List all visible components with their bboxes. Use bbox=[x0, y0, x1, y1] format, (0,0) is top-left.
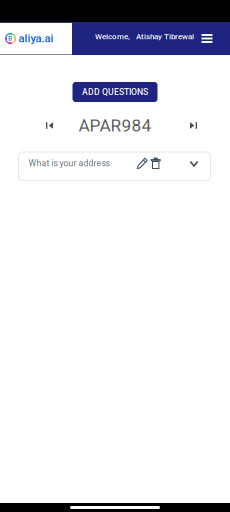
staticText: Welcome, Atishay Tibrewal bbox=[95, 32, 194, 41]
button[interactable]: Menu bbox=[196, 22, 218, 55]
button[interactable]: What is your address bbox=[18, 152, 210, 180]
button[interactable]: Previous question bbox=[40, 116, 58, 134]
staticText: What is your address bbox=[28, 158, 109, 168]
staticText: aliya.ai bbox=[18, 32, 53, 45]
staticText: ADD QUESTIONS bbox=[82, 87, 148, 97]
staticText: APAR984 bbox=[78, 115, 151, 136]
button[interactable]: Next question bbox=[184, 116, 202, 134]
button[interactable]: ADD QUESTIONS bbox=[72, 82, 157, 102]
